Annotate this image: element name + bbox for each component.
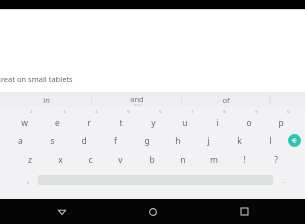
button[interactable]: 4	[73, 109, 105, 131]
button[interactable]: k	[224, 131, 255, 150]
button[interactable]: h	[162, 131, 193, 150]
staticText: l	[269, 135, 272, 147]
staticText: n	[180, 154, 186, 166]
button[interactable]: ?	[260, 150, 291, 169]
staticText: 9	[255, 109, 258, 114]
button[interactable]: j	[193, 131, 224, 150]
staticText: 2	[30, 109, 33, 114]
staticText: great on small tablets	[0, 74, 73, 84]
button[interactable]: f	[100, 131, 131, 150]
staticText: 8	[223, 109, 226, 114]
staticText: z	[28, 154, 32, 166]
button[interactable]: b	[136, 150, 167, 169]
staticText: .	[283, 176, 285, 186]
button[interactable]: in	[0, 92, 92, 107]
button[interactable]: 6	[137, 109, 169, 131]
staticText: h	[175, 135, 181, 147]
staticText: u	[182, 117, 188, 129]
button[interactable]: 5	[105, 109, 137, 131]
button[interactable]: m	[198, 150, 229, 169]
staticText: i	[216, 117, 219, 129]
staticText: t	[119, 117, 123, 129]
staticText: !	[243, 154, 246, 166]
staticText: g	[144, 135, 150, 147]
button[interactable]: Comma	[22, 175, 33, 186]
staticText: in	[43, 95, 50, 105]
staticText: of	[222, 95, 230, 105]
button[interactable]: Period	[278, 175, 289, 186]
button[interactable]: a	[4, 131, 36, 150]
staticText: m	[210, 154, 218, 166]
button[interactable]: Enter	[288, 134, 301, 147]
button[interactable]: and	[92, 92, 182, 107]
button[interactable]: Back	[49, 199, 75, 224]
staticText: r	[87, 117, 91, 129]
staticText: ?	[274, 154, 278, 166]
staticText: x	[58, 154, 63, 166]
button[interactable]: !	[229, 150, 260, 169]
button[interactable]: Recent apps	[231, 199, 257, 224]
button[interactable]: d	[68, 131, 100, 150]
staticText: e	[55, 117, 60, 129]
button[interactable]: 0	[265, 109, 297, 131]
button[interactable]: l	[255, 131, 286, 150]
staticText: j	[207, 135, 210, 147]
staticText: a	[18, 135, 23, 147]
button[interactable]: n	[167, 150, 198, 169]
button[interactable]: g	[131, 131, 162, 150]
button[interactable]: z	[15, 150, 45, 169]
staticText: k	[237, 135, 242, 147]
button[interactable]: x	[45, 150, 75, 169]
staticText: b	[149, 154, 155, 166]
staticText: 5	[127, 109, 130, 114]
button[interactable]: v	[105, 150, 136, 169]
staticText: ,	[27, 176, 29, 186]
staticText: 3	[63, 109, 66, 114]
staticText: d	[81, 135, 87, 147]
button[interactable]: of	[182, 92, 270, 107]
staticText: 4	[95, 109, 98, 114]
staticText: o	[246, 117, 252, 129]
button[interactable]: s	[36, 131, 68, 150]
button[interactable]: 7	[169, 109, 201, 131]
staticText: p	[278, 117, 284, 129]
staticText: 7	[191, 109, 194, 114]
staticText: v	[118, 154, 123, 166]
staticText: 6	[159, 109, 162, 114]
button[interactable]: c	[75, 150, 105, 169]
button[interactable]: Home	[140, 199, 166, 224]
button[interactable]: 3	[41, 109, 73, 131]
staticText: s	[50, 135, 55, 147]
button[interactable]: 9	[233, 109, 265, 131]
button[interactable]: 2	[8, 109, 41, 131]
button[interactable]: 8	[201, 109, 233, 131]
staticText: y	[151, 117, 156, 129]
staticText: f	[114, 135, 117, 147]
staticText: w	[21, 117, 28, 129]
staticText: c	[88, 154, 93, 166]
staticText: 0	[287, 109, 290, 114]
staticText: and	[130, 94, 144, 104]
